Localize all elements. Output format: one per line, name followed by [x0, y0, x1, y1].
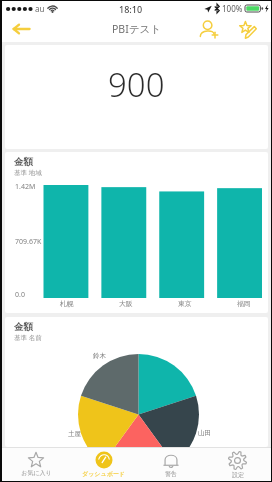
staticText: ダッシュボード	[82, 470, 125, 478]
staticText: 基準 名前	[14, 333, 42, 342]
staticText: 基準 地域	[14, 168, 42, 177]
staticText: 福岡	[237, 299, 251, 308]
staticText: お気に入り	[21, 469, 52, 477]
staticText: 金額	[14, 321, 33, 333]
staticText: 鈴木	[93, 352, 106, 360]
staticText: 土屋	[68, 430, 81, 438]
staticText: 東京	[178, 299, 192, 308]
staticText: 山田	[198, 429, 211, 437]
button[interactable]: 900	[5, 45, 268, 149]
staticText: 100%	[222, 3, 243, 14]
staticText: 設定	[232, 471, 244, 479]
button[interactable]: お気に入り	[2, 448, 70, 481]
button[interactable]: 警告	[137, 448, 204, 481]
button[interactable]: Back	[10, 18, 32, 40]
button[interactable]: 1.42M	[5, 152, 268, 313]
button[interactable]: 設定	[204, 448, 271, 481]
staticText: au	[35, 3, 45, 14]
staticText: 709.67K	[15, 237, 42, 247]
staticText: 900	[108, 62, 165, 107]
staticText: 0.0	[15, 290, 25, 300]
staticText: 警告	[165, 470, 177, 478]
staticText: 18:10	[119, 3, 143, 15]
button[interactable]: 鈴木	[5, 317, 268, 447]
staticText: PBIテスト	[112, 22, 161, 36]
staticText: 金額	[14, 156, 33, 168]
button[interactable]: ダッシュボード	[70, 448, 137, 481]
staticText: 札幌	[60, 299, 74, 308]
button[interactable]: Add person	[197, 17, 221, 41]
button[interactable]: Annotate	[235, 17, 259, 41]
staticText: 大阪	[119, 299, 133, 308]
staticText: 1.42M	[15, 182, 36, 192]
